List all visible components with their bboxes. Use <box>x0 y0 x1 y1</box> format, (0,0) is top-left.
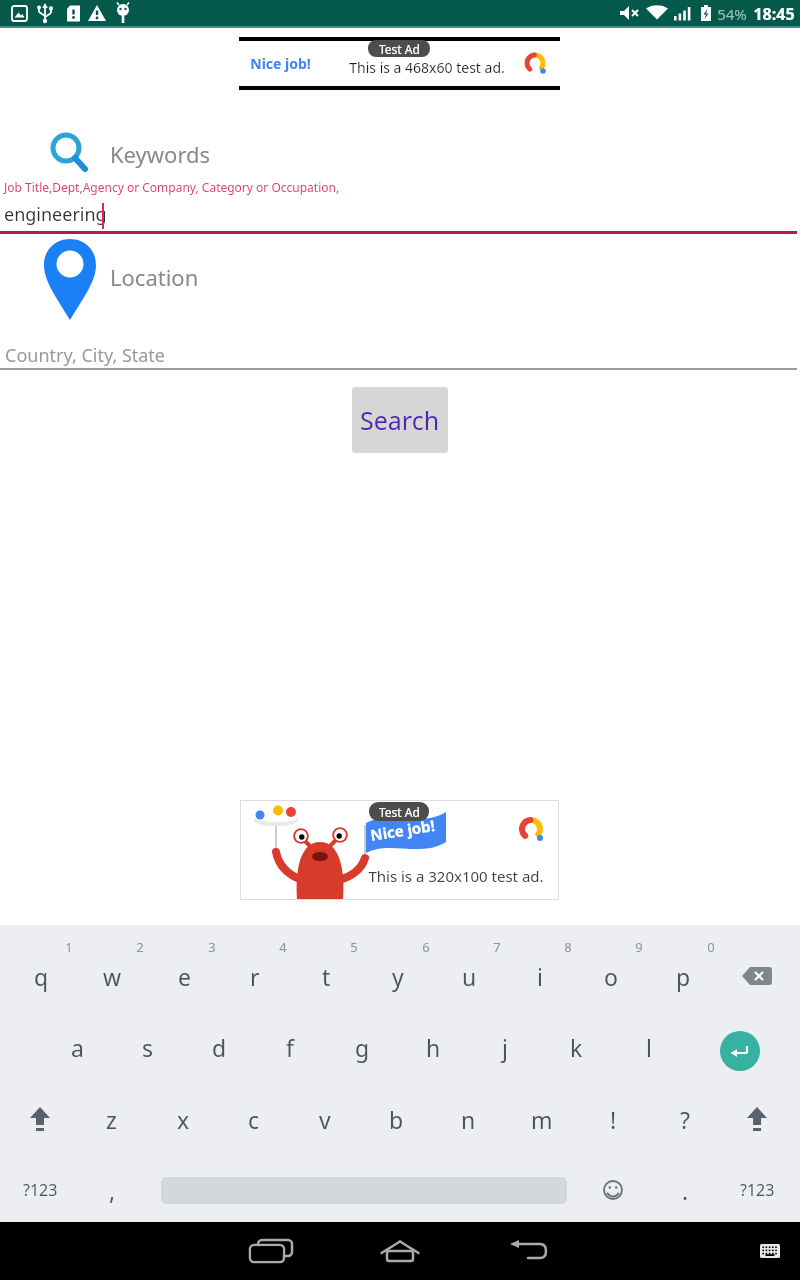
button[interactable]: p <box>648 941 718 1011</box>
button[interactable] <box>745 1230 795 1272</box>
button[interactable]: m <box>507 1084 577 1154</box>
staticText: a <box>71 1032 84 1063</box>
button[interactable]: b <box>361 1084 431 1154</box>
staticText: ! <box>610 1104 617 1135</box>
staticText: ? <box>680 1104 690 1135</box>
staticText: j <box>502 1032 508 1063</box>
button[interactable] <box>365 1223 435 1279</box>
button[interactable]: , <box>77 1155 147 1225</box>
button[interactable]: q <box>6 941 76 1011</box>
staticText: 4 <box>279 938 287 956</box>
staticText: c <box>248 1104 260 1135</box>
staticText: x <box>177 1104 190 1135</box>
staticText: Keywords <box>110 139 211 169</box>
button[interactable]: c <box>219 1084 289 1154</box>
button[interactable]: ?123 <box>722 1155 792 1225</box>
button[interactable]: a <box>42 1012 112 1082</box>
button[interactable] <box>722 1084 792 1154</box>
staticText: Nice job! <box>250 54 311 73</box>
staticText: 0 <box>707 938 715 956</box>
staticText: l <box>646 1032 652 1063</box>
button[interactable]: Nice job! <box>240 800 559 900</box>
staticText: 8 <box>564 938 572 956</box>
button[interactable] <box>494 1223 564 1279</box>
button[interactable]: Nice job! <box>239 37 560 90</box>
staticText: y <box>392 961 404 992</box>
staticText: o <box>604 961 618 992</box>
button[interactable] <box>0 234 800 371</box>
button[interactable]: . <box>650 1155 720 1225</box>
button[interactable]: ! <box>578 1084 648 1154</box>
button[interactable] <box>236 1223 306 1279</box>
staticText: g <box>355 1032 370 1063</box>
staticText: 7 <box>493 938 501 956</box>
staticText: Country, City, State <box>5 343 166 368</box>
button[interactable]: e <box>149 941 219 1011</box>
staticText: k <box>570 1032 583 1063</box>
button[interactable]: v <box>290 1084 360 1154</box>
button[interactable]: z <box>76 1084 146 1154</box>
staticText: This is a 320x100 test ad. <box>368 866 544 886</box>
staticText: r <box>250 961 260 992</box>
staticText: 6 <box>422 938 430 956</box>
staticText: Search <box>360 403 440 437</box>
staticText: engineering <box>4 202 107 227</box>
staticText: Test Ad <box>379 804 420 820</box>
staticText: z <box>106 1104 117 1135</box>
staticText: 2 <box>136 938 144 956</box>
button[interactable]: g <box>327 1012 397 1082</box>
staticText: ?123 <box>23 1179 58 1201</box>
button[interactable]: j <box>470 1012 540 1082</box>
staticText: 1 <box>65 938 73 956</box>
staticText: 9 <box>635 938 643 956</box>
button[interactable]: w <box>77 941 147 1011</box>
button[interactable]: u <box>434 941 504 1011</box>
staticText: 3 <box>208 938 216 956</box>
staticText: q <box>34 961 49 992</box>
staticText: h <box>426 1032 441 1063</box>
button[interactable]: k <box>541 1012 611 1082</box>
staticText: w <box>103 961 122 992</box>
button[interactable]: i <box>505 941 575 1011</box>
button[interactable]: ?123 <box>5 1155 75 1225</box>
button[interactable]: n <box>433 1084 503 1154</box>
button[interactable]: d <box>184 1012 254 1082</box>
staticText: 18:45 <box>753 3 795 25</box>
staticText: This is a 468x60 test ad. <box>349 58 505 77</box>
staticText: v <box>319 1104 331 1135</box>
button[interactable]: Search <box>352 387 448 453</box>
staticText: 5 <box>350 938 358 956</box>
staticText: s <box>142 1032 154 1063</box>
staticText: i <box>537 961 543 992</box>
button[interactable] <box>5 1084 75 1154</box>
staticText: 54% <box>717 4 747 24</box>
staticText: u <box>462 961 477 992</box>
staticText: Job Title,Dept,Agency or Company, Catego… <box>4 179 340 195</box>
staticText: f <box>286 1032 294 1063</box>
staticText: n <box>461 1104 476 1135</box>
button[interactable] <box>578 1155 648 1225</box>
button[interactable]: h <box>398 1012 468 1082</box>
staticText: p <box>676 961 691 992</box>
staticText: t <box>322 961 331 992</box>
staticText: . <box>682 1175 689 1206</box>
button[interactable]: ? <box>650 1084 720 1154</box>
button[interactable] <box>0 120 800 233</box>
staticText: b <box>389 1104 404 1135</box>
staticText: Test Ad <box>379 41 420 57</box>
button[interactable] <box>705 1016 775 1086</box>
staticText: e <box>178 961 191 992</box>
button[interactable]: x <box>148 1084 218 1154</box>
staticText: Location <box>110 262 199 292</box>
button[interactable]: r <box>220 941 290 1011</box>
button[interactable]: o <box>576 941 646 1011</box>
button[interactable]: y <box>363 941 433 1011</box>
button[interactable] <box>722 941 792 1011</box>
button[interactable]: f <box>255 1012 325 1082</box>
staticText: Nice job! <box>369 815 436 845</box>
button[interactable]: s <box>113 1012 183 1082</box>
staticText: m <box>531 1104 553 1135</box>
button[interactable]: l <box>614 1012 684 1082</box>
button[interactable]: t <box>291 941 361 1011</box>
